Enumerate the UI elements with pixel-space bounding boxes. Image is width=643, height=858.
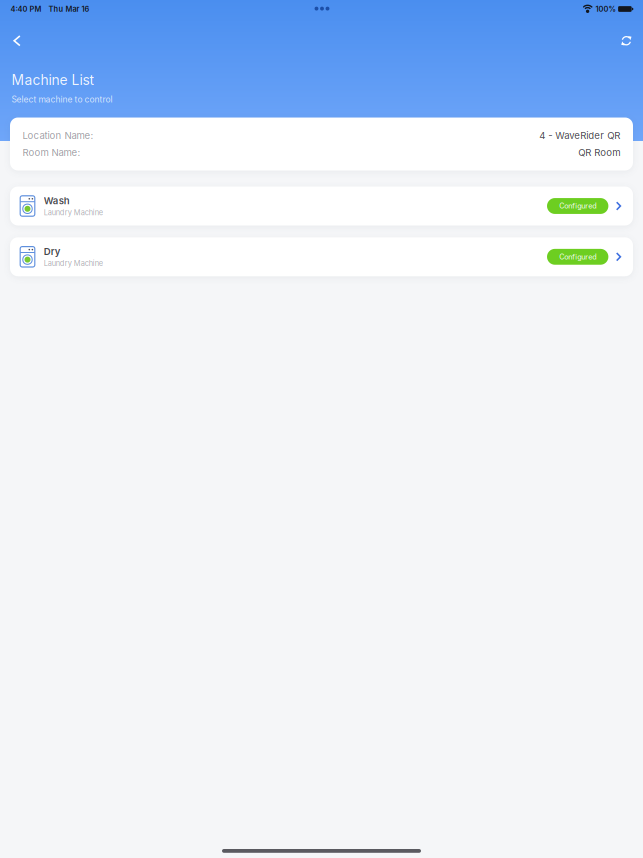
staticText: Dry [44, 246, 61, 257]
staticText: Configured [559, 202, 596, 210]
staticText: Machine List [11, 71, 94, 88]
staticText: Laundry Machine [44, 259, 103, 268]
staticText: Room Name: [23, 147, 81, 158]
staticText: 100% [596, 4, 616, 13]
staticText: Location Name: [23, 130, 94, 141]
staticText: 4 - WaveRider QR [539, 130, 620, 141]
staticText: QR Room [578, 147, 620, 158]
staticText: Laundry Machine [44, 208, 103, 217]
button[interactable]: Refresh [606, 29, 643, 53]
button[interactable]: Back [0, 29, 35, 53]
button[interactable]: Wash [10, 186, 633, 225]
staticText: Configured [559, 252, 596, 261]
staticText: Wash [44, 195, 70, 206]
staticText: Thu Mar 16 [48, 4, 89, 13]
button[interactable]: Dry [10, 237, 633, 276]
staticText: Select machine to control [11, 94, 112, 105]
staticText: 4:40 PM [10, 4, 41, 13]
